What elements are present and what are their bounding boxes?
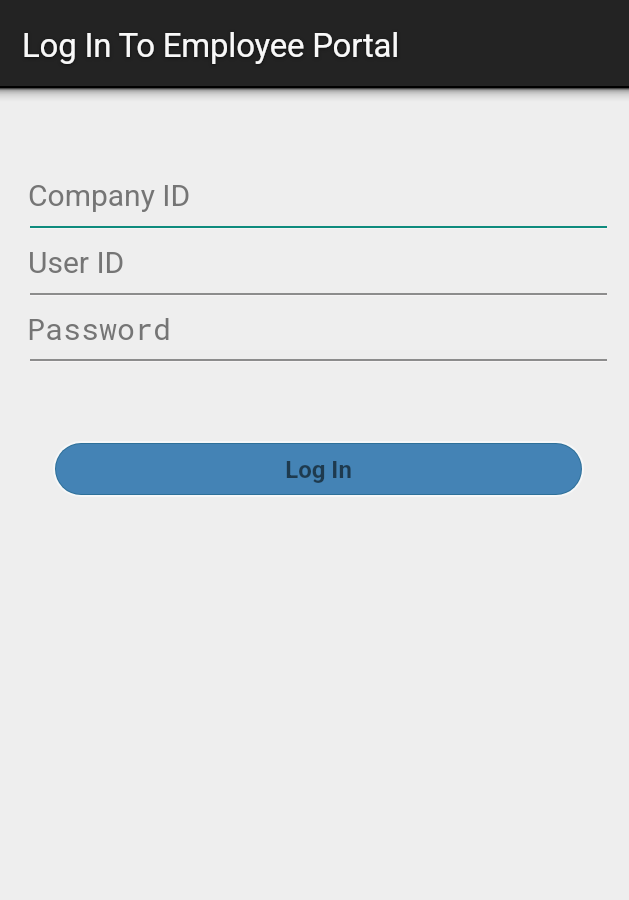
button[interactable]: Log In: [56, 444, 581, 494]
button[interactable]: User ID: [30, 245, 607, 297]
staticText: User ID: [28, 245, 125, 280]
staticText: Password: [27, 309, 172, 349]
staticText: Log In To Employee Portal: [22, 26, 399, 65]
button[interactable]: Company ID: [30, 178, 607, 230]
staticText: Company ID: [28, 178, 191, 213]
staticText: Log In: [285, 456, 352, 484]
button[interactable]: Password: [30, 311, 607, 363]
